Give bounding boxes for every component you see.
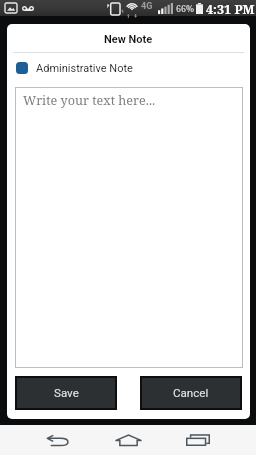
button[interactable]: Administrative Note — [7, 53, 250, 83]
staticText: 4G — [141, 1, 153, 12]
button[interactable]: Back — [34, 425, 82, 455]
button[interactable]: Cancel — [142, 378, 240, 408]
staticText: 66% — [176, 2, 195, 14]
staticText: Save — [54, 386, 79, 400]
button[interactable]: Recent apps — [174, 425, 222, 455]
staticText: Administrative Note — [36, 62, 133, 75]
button[interactable]: Home — [104, 425, 152, 455]
button[interactable]: Write your text here... — [15, 87, 243, 368]
staticText: 4:31 PM — [206, 1, 255, 17]
staticText: Write your text here... — [23, 92, 156, 109]
button[interactable]: Save — [17, 378, 115, 408]
staticText: Cancel — [173, 386, 209, 400]
staticText: New Note — [104, 33, 153, 46]
